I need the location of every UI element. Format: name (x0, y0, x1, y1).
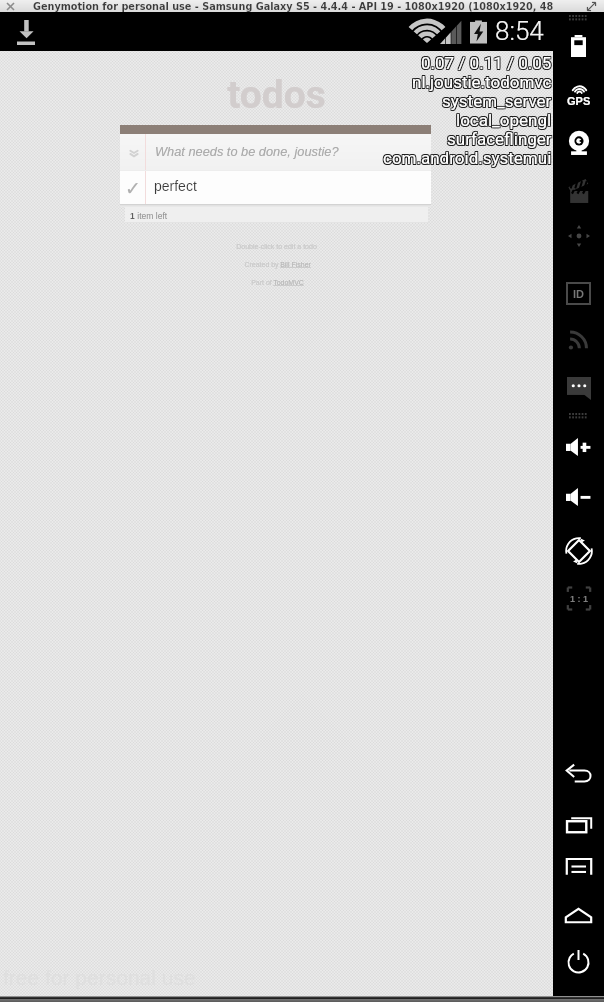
button[interactable]: Bill Fisher (280, 261, 311, 269)
staticText: 8:54 (495, 16, 544, 46)
staticText: surfaceflinger (448, 130, 553, 149)
staticText: nl.joustie.todomvc (413, 72, 553, 91)
staticText: system_server (443, 90, 553, 109)
staticText: 0.07 / 0.11 / 0.05 (422, 52, 553, 71)
staticText: nl.joustie.todomvc (411, 71, 551, 90)
staticText: com.android.systemui (383, 148, 552, 167)
staticText: system_server (441, 92, 551, 111)
button[interactable]: Power (553, 945, 604, 977)
staticText: ID (573, 288, 584, 300)
button[interactable]: Network (553, 326, 604, 352)
staticText: local_opengl (456, 109, 552, 128)
button[interactable]: Home (553, 903, 604, 927)
staticText: system_server (443, 91, 553, 110)
button[interactable]: Volume down (553, 484, 604, 510)
staticText: com.android.systemui (384, 147, 553, 166)
button[interactable]: TodoMVC (273, 279, 304, 287)
button[interactable]: Back (553, 760, 604, 786)
staticText: What needs to be done, joustie? (155, 144, 339, 158)
staticText: surfaceflinger (447, 129, 552, 148)
staticText: system_server (443, 92, 553, 111)
staticText: nl.joustie.todomvc (411, 73, 551, 92)
staticText: 0.07 / 0.11 / 0.05 (422, 54, 553, 73)
staticText: 0.07 / 0.11 / 0.05 (421, 54, 552, 73)
staticText: system_server (442, 92, 552, 111)
staticText: com.android.systemui (382, 148, 551, 167)
button[interactable]: Record video (553, 174, 604, 208)
staticText: com.android.systemui (382, 149, 551, 168)
staticText: com.android.systemui (382, 147, 551, 166)
staticText: system_server (442, 91, 552, 110)
staticText: nl.joustie.todomvc (412, 73, 552, 92)
staticText: nl.joustie.todomvc (412, 71, 552, 90)
button[interactable]: Maximize (587, 2, 596, 11)
staticText: 0.07 / 0.11 / 0.05 (420, 53, 551, 72)
staticText: com.android.systemui (384, 148, 553, 167)
button[interactable]: Identifiers (553, 280, 604, 306)
button[interactable]: Drag handle (553, 12, 604, 24)
staticText: local_opengl (457, 111, 553, 130)
staticText: surfaceflinger (447, 128, 552, 147)
button[interactable]: Download (17, 20, 35, 45)
staticText: surfaceflinger (446, 129, 551, 148)
button[interactable]: Webcam (553, 126, 604, 160)
staticText: ✓ (125, 177, 141, 199)
staticText: 0.07 / 0.11 / 0.05 (420, 54, 551, 73)
staticText: 0.07 / 0.11 / 0.05 (421, 52, 552, 71)
button[interactable]: Messages (553, 374, 604, 402)
staticText: GPS (567, 95, 591, 107)
staticText: nl.joustie.todomvc (413, 73, 553, 92)
staticText: system_server (441, 90, 551, 109)
button[interactable]: Rotate (553, 534, 604, 568)
button[interactable]: Close (4, 0, 16, 12)
staticText: free for personal use (3, 966, 196, 989)
staticText: 1 : 1 (570, 594, 589, 604)
button[interactable]: Volume up (553, 434, 604, 460)
staticText: item left (135, 211, 168, 220)
staticText: local_opengl (455, 110, 551, 129)
staticText: 0.07 / 0.11 / 0.05 (420, 52, 551, 71)
staticText: nl.joustie.todomvc (411, 72, 551, 91)
staticText: surfaceflinger (447, 130, 552, 149)
button[interactable]: GPS (553, 82, 604, 110)
staticText: surfaceflinger (448, 128, 553, 147)
staticText: 1 (130, 211, 135, 220)
staticText: local_opengl (457, 110, 553, 129)
staticText: Double-click to edit a todo (236, 243, 317, 251)
staticText: surfaceflinger (448, 129, 553, 148)
staticText: Created by (243, 261, 280, 269)
staticText: local_opengl (455, 109, 551, 128)
staticText: todos (0, 72, 553, 118)
button[interactable]: D-pad (553, 222, 604, 250)
staticText: com.android.systemui (384, 149, 553, 168)
staticText: system_server (441, 91, 551, 110)
staticText: local_opengl (457, 109, 553, 128)
staticText: surfaceflinger (446, 128, 551, 147)
staticText: nl.joustie.todomvc (412, 72, 552, 91)
staticText: surfaceflinger (446, 130, 551, 149)
button[interactable]: Drag handle 2 (553, 408, 604, 424)
button[interactable]: Scale one to one (553, 583, 604, 613)
staticText: 0.07 / 0.11 / 0.05 (421, 53, 552, 72)
staticText: Part of (250, 279, 273, 287)
button[interactable]: Battery (553, 30, 604, 62)
staticText: system_server (442, 90, 552, 109)
staticText: local_opengl (456, 111, 552, 130)
staticText: Genymotion for personal use - Samsung Ga… (33, 1, 554, 12)
staticText: perfect (154, 178, 197, 194)
staticText: com.android.systemui (383, 149, 552, 168)
staticText: local_opengl (456, 110, 552, 129)
button[interactable]: Menu (553, 853, 604, 879)
staticText: com.android.systemui (383, 147, 552, 166)
button[interactable]: Recent apps (553, 810, 604, 836)
staticText: 0.07 / 0.11 / 0.05 (422, 53, 553, 72)
staticText: nl.joustie.todomvc (413, 71, 553, 90)
staticText: local_opengl (455, 111, 551, 130)
